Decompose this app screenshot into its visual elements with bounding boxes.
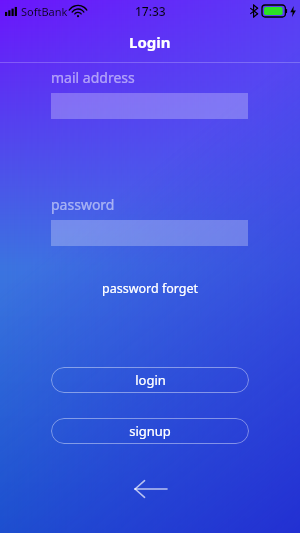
- staticText: Login: [129, 32, 171, 52]
- staticText: login: [135, 371, 166, 389]
- staticText: password: [51, 195, 115, 214]
- button[interactable]: password forget: [0, 280, 300, 297]
- staticText: password forget: [102, 280, 199, 297]
- button[interactable]: login: [51, 367, 249, 393]
- staticText: SoftBank: [21, 4, 68, 19]
- button[interactable]: signup: [51, 418, 249, 444]
- button[interactable]: Back: [128, 474, 172, 504]
- staticText: signup: [129, 422, 171, 440]
- staticText: mail address: [51, 68, 135, 87]
- button[interactable]: [51, 220, 248, 246]
- staticText: 17:33: [135, 3, 166, 19]
